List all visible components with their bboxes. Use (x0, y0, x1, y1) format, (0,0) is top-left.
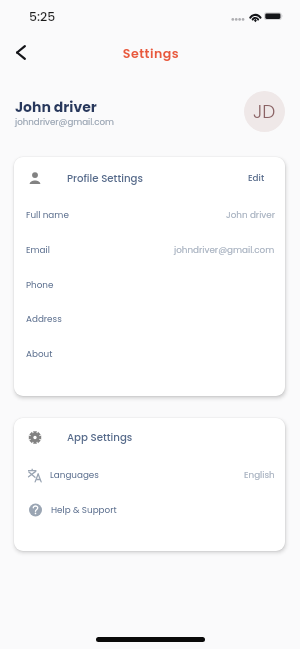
button[interactable]: Help & Support (14, 495, 285, 525)
staticText: Edit (248, 172, 265, 184)
staticText: Phone (26, 279, 54, 291)
staticText: Help & Support (51, 504, 117, 516)
staticText: Languages (50, 469, 99, 481)
staticText: JD (253, 99, 276, 125)
button[interactable]: Address (14, 304, 285, 334)
button[interactable]: Languages (14, 460, 285, 490)
staticText: Full name (26, 209, 69, 221)
button[interactable]: App Settings (14, 422, 285, 452)
button[interactable]: Full name (14, 200, 285, 230)
staticText: App Settings (67, 430, 133, 444)
staticText: Profile Settings (67, 171, 143, 185)
button[interactable]: Edit (240, 167, 273, 189)
staticText: 5:25 (29, 8, 56, 25)
staticText: Address (26, 313, 62, 325)
staticText: John driver (226, 209, 275, 221)
button[interactable]: Back (2, 34, 39, 71)
button[interactable]: Profile Settings (14, 163, 285, 193)
staticText: johndriver@gmail.com (174, 244, 275, 256)
staticText: English (244, 469, 275, 481)
button[interactable]: About (14, 339, 285, 369)
button[interactable]: Phone (14, 270, 285, 300)
staticText: John driver (15, 97, 97, 117)
staticText: johndriver@gmail.com (15, 116, 114, 128)
staticText: Email (26, 244, 50, 256)
button[interactable]: Email (14, 235, 285, 265)
staticText: Settings (1, 45, 300, 63)
staticText: About (26, 348, 53, 360)
button[interactable]: JD (244, 91, 285, 132)
